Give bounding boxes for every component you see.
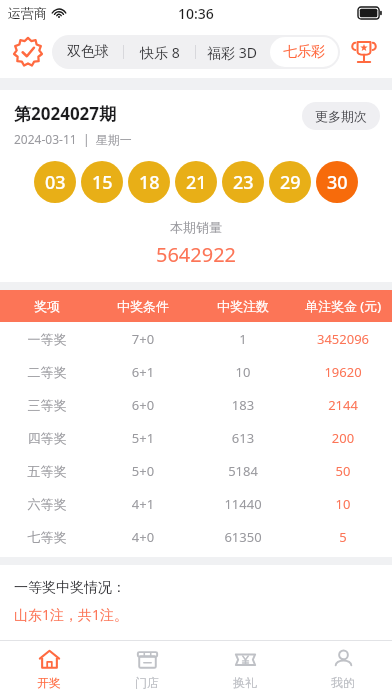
staticText: 运营商 xyxy=(8,5,47,21)
button[interactable]: 门店 xyxy=(98,641,196,696)
staticText: 七乐彩 xyxy=(283,43,325,61)
staticText: 三等奖 xyxy=(0,397,94,413)
staticText: 中奖条件 xyxy=(94,298,192,314)
staticText: 单注奖金 (元) xyxy=(294,297,392,315)
staticText: 四等奖 xyxy=(0,430,94,446)
button[interactable]: 更多期次 xyxy=(302,102,380,130)
staticText: 50 xyxy=(294,462,392,480)
staticText: 开奖 xyxy=(37,675,61,690)
staticText: 10 xyxy=(192,363,294,381)
staticText: 换礼 xyxy=(233,675,257,690)
staticText: 福彩 3D xyxy=(207,43,257,62)
staticText: 7+0 xyxy=(94,330,192,348)
button[interactable]: 双色球 xyxy=(54,37,121,67)
staticText: 10 xyxy=(294,495,392,513)
button[interactable]: 福彩 3D xyxy=(198,37,266,67)
staticText: 23 xyxy=(233,170,254,195)
staticText: 更多期次 xyxy=(315,108,367,124)
staticText: 30 xyxy=(327,170,348,195)
button[interactable]: 开奖 xyxy=(0,641,98,696)
staticText: 二等奖 xyxy=(0,364,94,380)
staticText: 中奖注数 xyxy=(192,298,294,314)
staticText: 19620 xyxy=(294,363,392,381)
staticText: 6+0 xyxy=(94,396,192,414)
staticText: 11440 xyxy=(192,495,294,513)
staticText: 快乐 8 xyxy=(140,43,180,62)
staticText: 10:36 xyxy=(178,4,214,23)
staticText: 五等奖 xyxy=(0,463,94,479)
staticText: 18 xyxy=(139,170,160,195)
button[interactable]: 七乐彩 xyxy=(270,37,338,67)
staticText: 5184 xyxy=(192,462,294,480)
staticText: 15 xyxy=(92,170,113,195)
staticText: 3452096 xyxy=(294,330,392,348)
staticText: 5642922 xyxy=(0,241,392,268)
staticText: 61350 xyxy=(192,528,294,546)
staticText: 一等奖中奖情况： xyxy=(14,579,126,597)
staticText: 200 xyxy=(294,429,392,447)
button[interactable]: 我的 xyxy=(294,641,392,696)
staticText: 双色球 xyxy=(67,43,109,61)
staticText: 2144 xyxy=(294,396,392,414)
staticText: 2024-03-11 | 星期一 xyxy=(14,131,132,147)
staticText: 第2024027期 xyxy=(14,102,117,125)
button[interactable]: 快乐 8 xyxy=(126,37,193,67)
staticText: 七等奖 xyxy=(0,529,94,545)
staticText: 4+0 xyxy=(94,528,192,546)
staticText: 奖项 xyxy=(0,298,94,314)
staticText: 六等奖 xyxy=(0,496,94,512)
staticText: 5+0 xyxy=(94,462,192,480)
staticText: 山东1注，共1注。 xyxy=(14,605,129,624)
staticText: 本期销量 xyxy=(0,219,392,235)
staticText: 21 xyxy=(186,170,207,195)
staticText: 29 xyxy=(280,170,301,195)
button[interactable]: 换礼 xyxy=(196,641,294,696)
staticText: 门店 xyxy=(135,675,159,690)
staticText: 6+1 xyxy=(94,363,192,381)
staticText: 5 xyxy=(294,528,392,546)
staticText: 一等奖 xyxy=(0,331,94,347)
staticText: 我的 xyxy=(331,675,355,690)
staticText: 5+1 xyxy=(94,429,192,447)
staticText: 03 xyxy=(45,170,66,195)
staticText: 183 xyxy=(192,396,294,414)
staticText: 1 xyxy=(192,330,294,348)
button[interactable]: 已验证 xyxy=(8,32,48,72)
staticText: 4+1 xyxy=(94,495,192,513)
button[interactable]: 排行榜 xyxy=(344,32,384,72)
staticText: 613 xyxy=(192,429,294,447)
